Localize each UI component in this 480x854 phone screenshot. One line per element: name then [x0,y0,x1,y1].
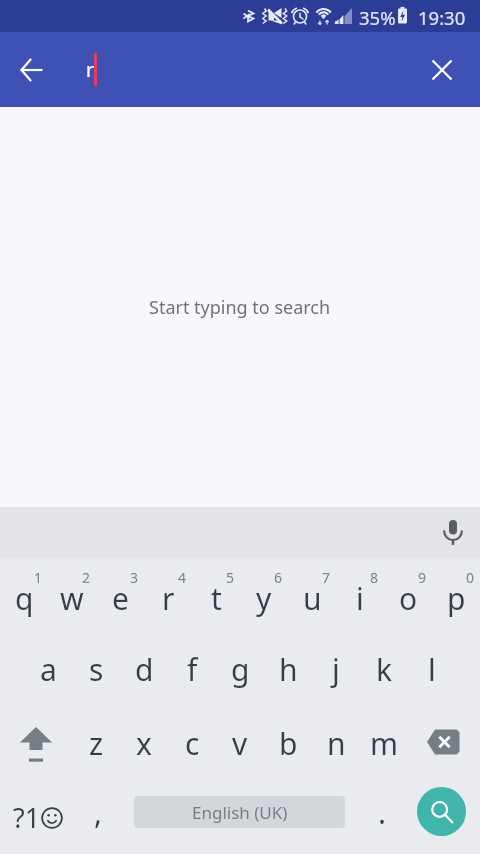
button[interactable]: w [48,558,96,632]
button[interactable]: . [358,780,406,854]
staticText: 4 [178,568,187,587]
staticText: n [327,723,346,764]
staticText: j [332,649,340,690]
button[interactable]: u [288,558,336,632]
staticText: s [89,649,104,690]
button[interactable]: y [240,558,288,632]
staticText: 2 [82,568,91,587]
button[interactable]: v [216,706,264,780]
staticText: 7 [322,568,331,587]
button[interactable]: , [74,780,122,854]
button[interactable]: m [360,706,408,780]
staticText: w [60,578,84,619]
button[interactable]: q [0,558,48,632]
staticText: 1 [34,568,43,587]
staticText: , [94,792,103,833]
button[interactable]: Symbols [8,780,68,854]
button[interactable]: Close search [420,48,464,92]
button[interactable]: p [432,558,480,632]
staticText: 8 [370,568,379,587]
button[interactable]: n [312,706,360,780]
staticText: b [279,723,298,764]
button[interactable]: o [384,558,432,632]
staticText: . [378,792,387,833]
staticText: z [89,723,104,764]
staticText: 9 [418,568,427,587]
button[interactable]: g [216,632,264,706]
staticText: i [356,578,364,619]
staticText: u [303,578,322,619]
button[interactable]: s [72,632,120,706]
button[interactable]: Voice input [433,513,473,553]
staticText: 3 [130,568,139,587]
staticText: l [428,649,436,690]
staticText: Start typing to search [149,295,331,320]
staticText: h [279,649,298,690]
button[interactable]: b [264,706,312,780]
staticText: k [376,649,393,690]
staticText: d [135,649,154,690]
button[interactable]: z [72,706,120,780]
staticText: 0 [466,568,475,587]
staticText: r [162,578,175,619]
button[interactable]: l [408,632,456,706]
button[interactable]: k [360,632,408,706]
button[interactable]: f [168,632,216,706]
staticText: e [112,578,129,619]
staticText: y [256,578,272,619]
staticText: r [86,57,94,83]
button[interactable]: r [144,558,192,632]
button[interactable]: c [168,706,216,780]
staticText: ?1 [13,799,41,836]
staticText: a [40,649,57,690]
staticText: f [187,649,198,690]
button[interactable]: j [312,632,360,706]
button[interactable]: e [96,558,144,632]
staticText: x [136,723,152,764]
button[interactable]: d [120,632,168,706]
button[interactable]: English (UK) [134,796,345,828]
staticText: o [399,578,418,619]
staticText: 5 [226,568,235,587]
staticText: g [231,649,250,690]
staticText: t [211,578,222,619]
button[interactable]: a [24,632,72,706]
staticText: 19:30 [418,5,466,30]
button[interactable]: x [120,706,168,780]
staticText: m [370,723,399,764]
button[interactable]: i [336,558,384,632]
button[interactable]: Search [417,787,466,836]
staticText: p [447,578,466,619]
staticText: 6 [274,568,283,587]
staticText: English (UK) [192,801,288,824]
button[interactable]: t [192,558,240,632]
staticText: v [232,723,248,764]
staticText: 35% [359,5,396,30]
button[interactable]: h [264,632,312,706]
button[interactable]: Backspace [408,706,480,780]
button[interactable]: Shift [0,706,72,780]
button[interactable]: Back [10,48,54,92]
staticText: q [15,578,34,619]
staticText: c [185,723,200,764]
